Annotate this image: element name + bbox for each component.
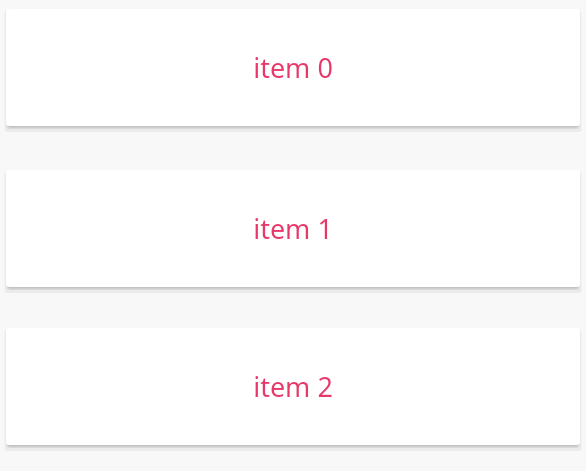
- staticText: item 0: [253, 49, 333, 86]
- staticText: item 1: [253, 210, 333, 247]
- button[interactable]: item 2: [6, 328, 580, 445]
- button[interactable]: item 1: [6, 170, 580, 287]
- button[interactable]: item 0: [6, 9, 580, 126]
- staticText: item 2: [253, 368, 333, 405]
